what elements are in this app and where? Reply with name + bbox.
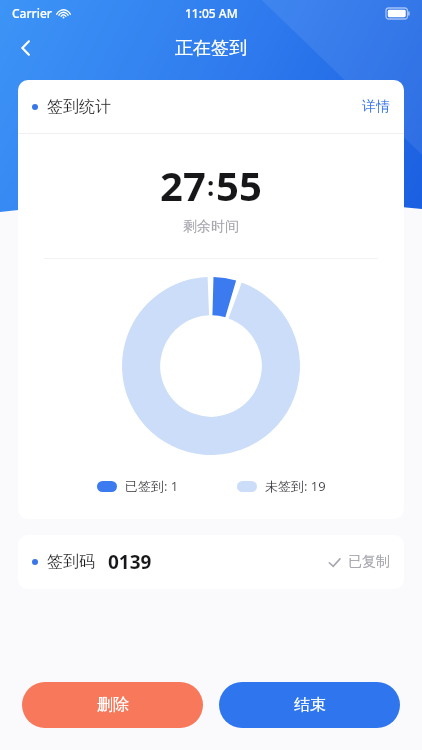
staticText: 剩余时间 <box>18 218 404 236</box>
staticText: 已复制 <box>348 553 390 571</box>
button[interactable]: 签到码 <box>18 535 404 589</box>
button[interactable]: 签到统计 <box>18 80 404 133</box>
staticText: 0139 <box>108 549 152 575</box>
staticText: 结束 <box>294 695 326 715</box>
staticText: 签到码 <box>47 552 95 572</box>
staticText: 详情 <box>362 98 390 116</box>
button[interactable]: Back <box>6 28 46 68</box>
staticText: 55 <box>216 158 262 212</box>
staticText: 11:05 AM <box>185 5 238 21</box>
button[interactable]: 结束 <box>219 682 400 728</box>
staticText: Carrier <box>12 5 52 21</box>
staticText: 删除 <box>97 695 129 715</box>
staticText: : <box>207 168 215 203</box>
staticText: 未签到: 19 <box>265 477 326 495</box>
staticText: 27 <box>160 158 206 212</box>
staticText: 签到统计 <box>47 97 111 117</box>
staticText: 已签到: 1 <box>125 477 179 495</box>
button[interactable]: 删除 <box>22 682 203 728</box>
staticText: 正在签到 <box>175 37 247 60</box>
